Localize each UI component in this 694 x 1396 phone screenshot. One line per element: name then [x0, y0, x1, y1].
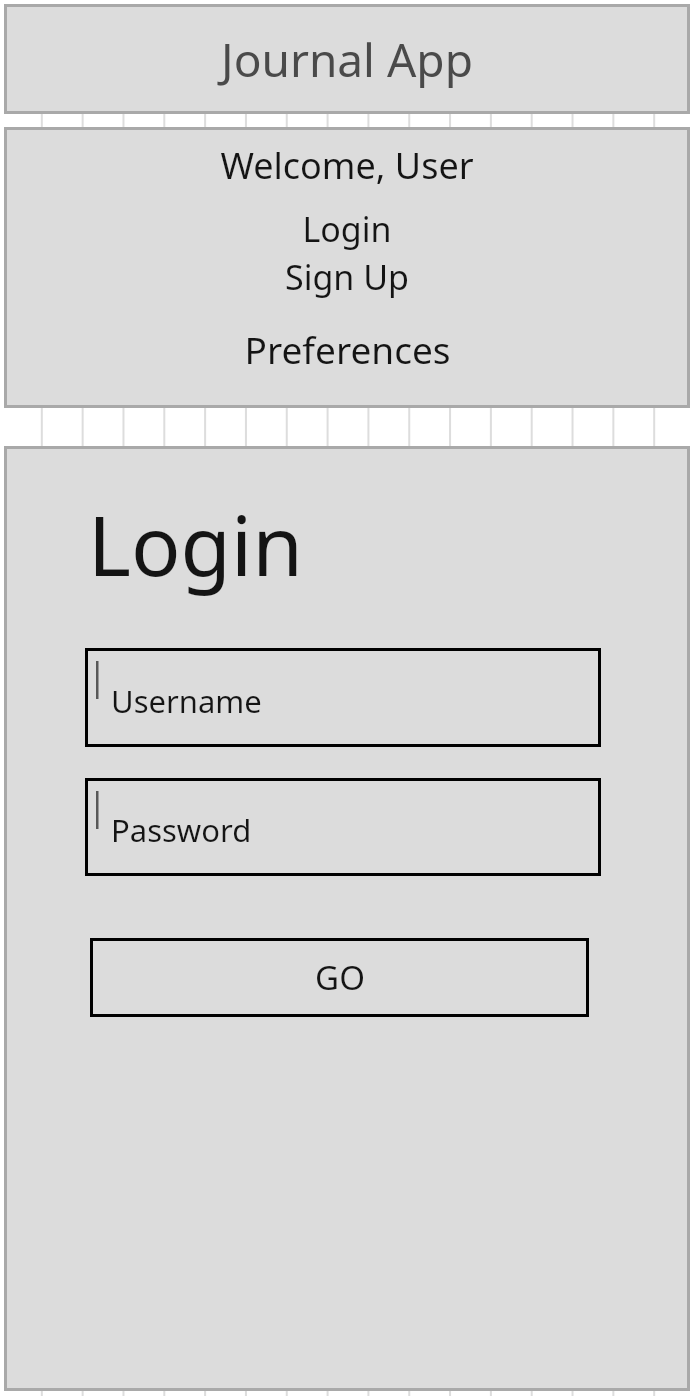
staticText: Username [111, 680, 262, 722]
button[interactable]: Username [85, 648, 601, 747]
button[interactable]: Sign Up [285, 254, 409, 300]
button[interactable]: Password [85, 778, 601, 876]
staticText: Password [111, 809, 252, 851]
button[interactable]: Welcome, User [220, 141, 474, 190]
button[interactable]: Preferences [244, 324, 451, 374]
staticText: Login [88, 488, 303, 600]
button[interactable]: Journal App [4, 4, 690, 114]
button[interactable]: Login [302, 206, 392, 252]
staticText: GO [315, 955, 365, 1000]
button[interactable]: GO [90, 938, 589, 1017]
staticText: Journal App [221, 28, 473, 91]
